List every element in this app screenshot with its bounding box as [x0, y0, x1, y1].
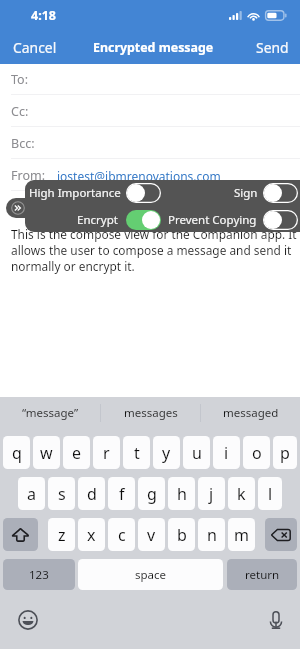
staticText: t: [134, 442, 140, 464]
button[interactable]: Sign off: [263, 183, 298, 203]
staticText: allows the user to compose a message and…: [11, 242, 292, 258]
button[interactable]: b: [168, 518, 195, 551]
button[interactable]: Expand options: [6, 198, 48, 218]
staticText: d: [87, 483, 97, 505]
button[interactable]: w: [33, 436, 60, 469]
button[interactable]: Backspace: [265, 518, 297, 551]
staticText: This is the compose view for the Compani…: [11, 226, 297, 242]
button[interactable]: p: [273, 436, 297, 469]
staticText: u: [192, 442, 202, 464]
staticText: i: [224, 442, 229, 464]
staticText: messaged: [223, 405, 279, 421]
button[interactable]: t: [123, 436, 150, 469]
button[interactable]: c: [108, 518, 135, 551]
staticText: g: [147, 483, 157, 505]
button[interactable]: a: [18, 477, 45, 510]
staticText: o: [252, 442, 262, 464]
staticText: q: [12, 442, 22, 464]
staticText: l: [268, 483, 273, 505]
staticText: v: [147, 524, 156, 546]
staticText: normally or encrypt it.: [11, 258, 135, 274]
staticText: Cancel: [13, 38, 57, 57]
button[interactable]: messages: [101, 397, 200, 429]
button[interactable]: x: [78, 518, 105, 551]
button[interactable]: n: [198, 518, 225, 551]
button[interactable]: d: [78, 477, 105, 510]
staticText: “message”: [22, 405, 79, 421]
button[interactable]: j: [198, 477, 225, 510]
staticText: x: [87, 524, 96, 546]
staticText: y: [162, 442, 171, 464]
staticText: messages: [124, 405, 178, 421]
button[interactable]: s: [48, 477, 75, 510]
staticText: r: [103, 442, 110, 464]
staticText: k: [237, 483, 246, 505]
staticText: f: [119, 483, 125, 505]
staticText: j: [209, 483, 214, 505]
staticText: p: [280, 442, 290, 464]
button[interactable]: u: [183, 436, 210, 469]
button[interactable]: From:: [0, 159, 300, 191]
button[interactable]: Prevent Copying off: [263, 210, 298, 230]
button[interactable]: “message”: [0, 397, 100, 429]
button[interactable]: High Importance off: [126, 183, 161, 203]
button[interactable]: messaged: [201, 397, 300, 429]
staticText: Encrypted message: [93, 39, 214, 56]
button[interactable]: Shift: [3, 518, 38, 551]
button[interactable]: Encrypt: [77, 208, 118, 231]
button[interactable]: q: [3, 436, 30, 469]
button[interactable]: space: [78, 559, 223, 590]
button[interactable]: k: [228, 477, 255, 510]
button[interactable]: Cc:: [0, 95, 300, 127]
button[interactable]: r: [93, 436, 120, 469]
button[interactable]: Prevent Copying: [168, 208, 257, 231]
staticText: return: [245, 567, 280, 583]
staticText: n: [207, 524, 217, 546]
staticText: Encrypt: [77, 212, 118, 228]
button[interactable]: m: [228, 518, 255, 551]
button[interactable]: Bcc:: [0, 127, 300, 159]
staticText: c: [118, 524, 126, 546]
staticText: Bcc:: [11, 135, 35, 152]
button[interactable]: o: [243, 436, 270, 469]
staticText: m: [234, 524, 249, 546]
button[interactable]: g: [138, 477, 165, 510]
staticText: space: [135, 567, 167, 583]
button[interactable]: Dictation: [262, 606, 290, 634]
staticText: a: [27, 483, 36, 505]
staticText: High Importance: [29, 185, 121, 201]
button[interactable]: f: [108, 477, 135, 510]
staticText: Sign: [234, 185, 258, 201]
staticText: h: [177, 483, 187, 505]
button[interactable]: z: [48, 518, 75, 551]
button[interactable]: Sign: [234, 181, 258, 204]
staticText: z: [58, 524, 66, 546]
button[interactable]: return: [227, 559, 297, 590]
staticText: From:: [11, 167, 46, 184]
staticText: 123: [29, 567, 49, 583]
button[interactable]: y: [153, 436, 180, 469]
staticText: jostest@ibmrenovations.com: [57, 168, 221, 184]
button[interactable]: Emoji keyboard: [14, 606, 42, 634]
staticText: e: [72, 442, 82, 464]
staticText: b: [177, 524, 187, 546]
button[interactable]: h: [168, 477, 195, 510]
button[interactable]: v: [138, 518, 165, 551]
staticText: w: [40, 442, 53, 464]
button[interactable]: 123: [3, 559, 75, 590]
staticText: s: [58, 483, 66, 505]
button[interactable]: e: [63, 436, 90, 469]
button[interactable]: i: [213, 436, 240, 469]
staticText: To:: [11, 71, 28, 88]
button[interactable]: High Importance: [29, 181, 121, 204]
button[interactable]: Encrypt on: [126, 210, 161, 230]
staticText: Prevent Copying: [168, 212, 257, 228]
button[interactable]: Send: [243, 31, 300, 64]
staticText: Send: [256, 38, 289, 57]
button[interactable]: l: [258, 477, 282, 510]
button[interactable]: Cancel: [0, 31, 70, 64]
button[interactable]: To:: [0, 64, 300, 95]
staticText: 4:18: [31, 7, 56, 24]
staticText: Cc:: [11, 103, 29, 120]
